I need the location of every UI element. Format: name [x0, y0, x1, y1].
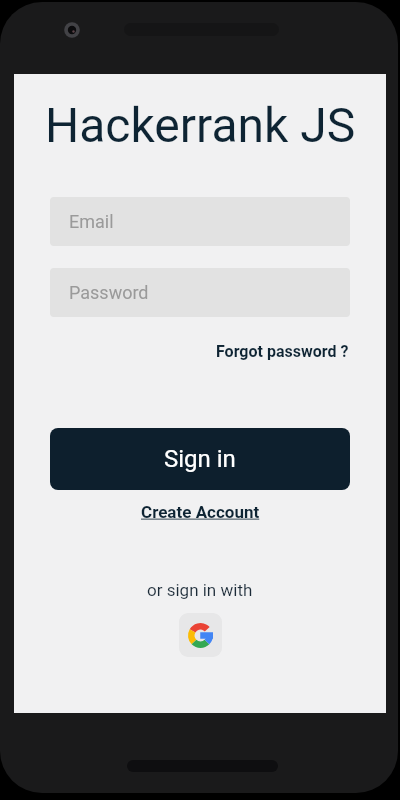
staticText: Forgot password ? — [216, 342, 349, 361]
staticText: Sign in — [164, 445, 236, 473]
button[interactable] — [179, 613, 222, 657]
button[interactable]: Create Account — [141, 502, 260, 522]
staticText: or sign in with — [147, 580, 253, 600]
button[interactable]: Password — [50, 268, 350, 317]
staticText: Password — [69, 282, 149, 303]
staticText: Create Account — [141, 502, 260, 522]
staticText: Email — [69, 211, 114, 232]
staticText: Hackerrank JS — [45, 97, 356, 153]
button[interactable]: Sign in — [50, 428, 350, 490]
button[interactable]: Email — [50, 197, 350, 246]
button[interactable]: Forgot password ? — [216, 342, 349, 361]
